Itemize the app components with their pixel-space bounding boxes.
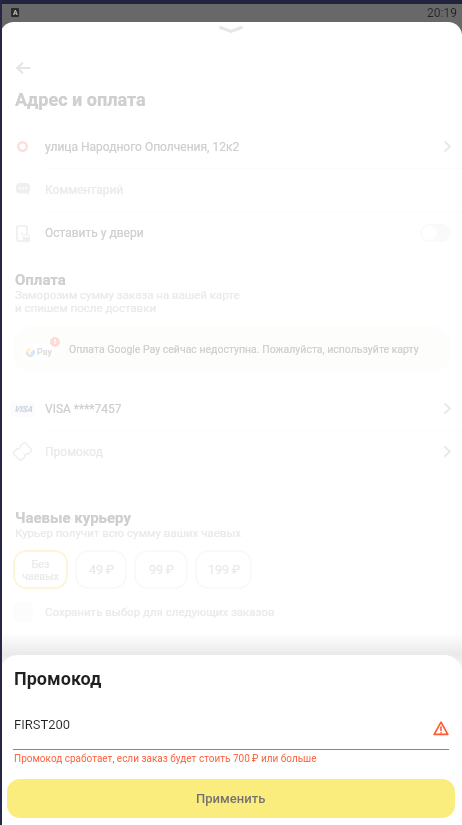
staticText: A <box>13 9 18 17</box>
button[interactable]: улица Народного Ополчения, 12к2 <box>0 125 462 168</box>
button[interactable]: Применить <box>7 779 455 818</box>
button[interactable]: VISA <box>0 387 462 430</box>
staticText: Адрес и оплата <box>15 89 146 110</box>
staticText: Промокод <box>45 445 444 459</box>
staticText: Промокод <box>14 668 102 689</box>
staticText: Курьер получит всю сумму ваших чаевых <box>15 526 241 539</box>
staticText: VISA ****7457 <box>45 402 444 416</box>
staticText: 199 ₽ <box>208 562 240 577</box>
staticText: Pay <box>37 347 52 358</box>
staticText: улица Народного Ополчения, 12к2 <box>45 140 444 154</box>
button[interactable]: Pay <box>13 326 451 372</box>
staticText: Комментарий <box>45 183 462 197</box>
staticText: Оплата <box>15 271 66 289</box>
button[interactable]: Сохранить выбор для следующих заказов <box>13 601 275 622</box>
staticText: Сохранить выбор для следующих заказов <box>45 605 275 618</box>
staticText: FIRST200 <box>14 717 71 732</box>
button[interactable]: Без чаевых <box>13 550 68 589</box>
button[interactable]: 99 ₽ <box>134 550 188 589</box>
staticText: VISA <box>14 404 33 414</box>
button[interactable]: Промокод <box>0 430 462 473</box>
staticText: 20:19 <box>427 6 457 20</box>
button[interactable]: Назад <box>10 55 36 81</box>
button[interactable]: Комментарий <box>0 168 462 211</box>
other: Ошибка <box>433 721 449 736</box>
staticText: Заморозим сумму заказа на вашей карте и … <box>15 288 240 314</box>
staticText: Оплата Google Pay сейчас недоступна. Пож… <box>69 343 419 355</box>
staticText: 49 ₽ <box>89 562 114 577</box>
button[interactable]: 49 ₽ <box>75 550 127 589</box>
button[interactable]: Оставить у двери <box>0 211 462 254</box>
staticText: ! <box>54 338 56 346</box>
staticText: Без чаевых <box>22 558 59 582</box>
staticText: 99 ₽ <box>149 562 174 577</box>
button[interactable]: 199 ₽ <box>195 550 252 589</box>
staticText: Чаевые курьеру <box>15 509 132 527</box>
staticText: Промокод сработает, если заказ будет сто… <box>14 753 317 765</box>
staticText: Оставить у двери <box>45 226 420 240</box>
staticText: Применить <box>196 791 266 806</box>
